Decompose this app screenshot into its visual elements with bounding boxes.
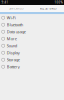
button[interactable]: More	[0, 35, 64, 42]
button[interactable]: Display	[0, 49, 64, 56]
staticText: ALL SETTINGS	[40, 7, 56, 10]
staticText: SIM CARDS	[9, 7, 23, 10]
button[interactable]: SIM CARDS	[0, 5, 32, 12]
button[interactable]: Sound	[0, 42, 64, 49]
button[interactable]: Data usage	[0, 28, 64, 35]
button[interactable]: Wi-Fi	[0, 14, 64, 21]
button[interactable]: Bluetooth	[0, 21, 64, 28]
staticText: More	[7, 36, 17, 41]
staticText: Bluetooth	[7, 22, 23, 27]
staticText: 9:41	[1, 1, 8, 4]
staticText: Data usage	[7, 29, 26, 34]
button[interactable]: Storage	[0, 56, 64, 63]
staticText: Display	[7, 50, 20, 55]
staticText: Wi-Fi	[7, 15, 16, 20]
staticText: Storage	[7, 57, 20, 62]
staticText: Battery	[7, 64, 20, 69]
button[interactable]: Battery	[0, 63, 64, 70]
staticText: Sound	[7, 43, 17, 48]
button[interactable]: ALL SETTINGS	[32, 5, 64, 12]
staticText: 100%	[54, 1, 62, 4]
